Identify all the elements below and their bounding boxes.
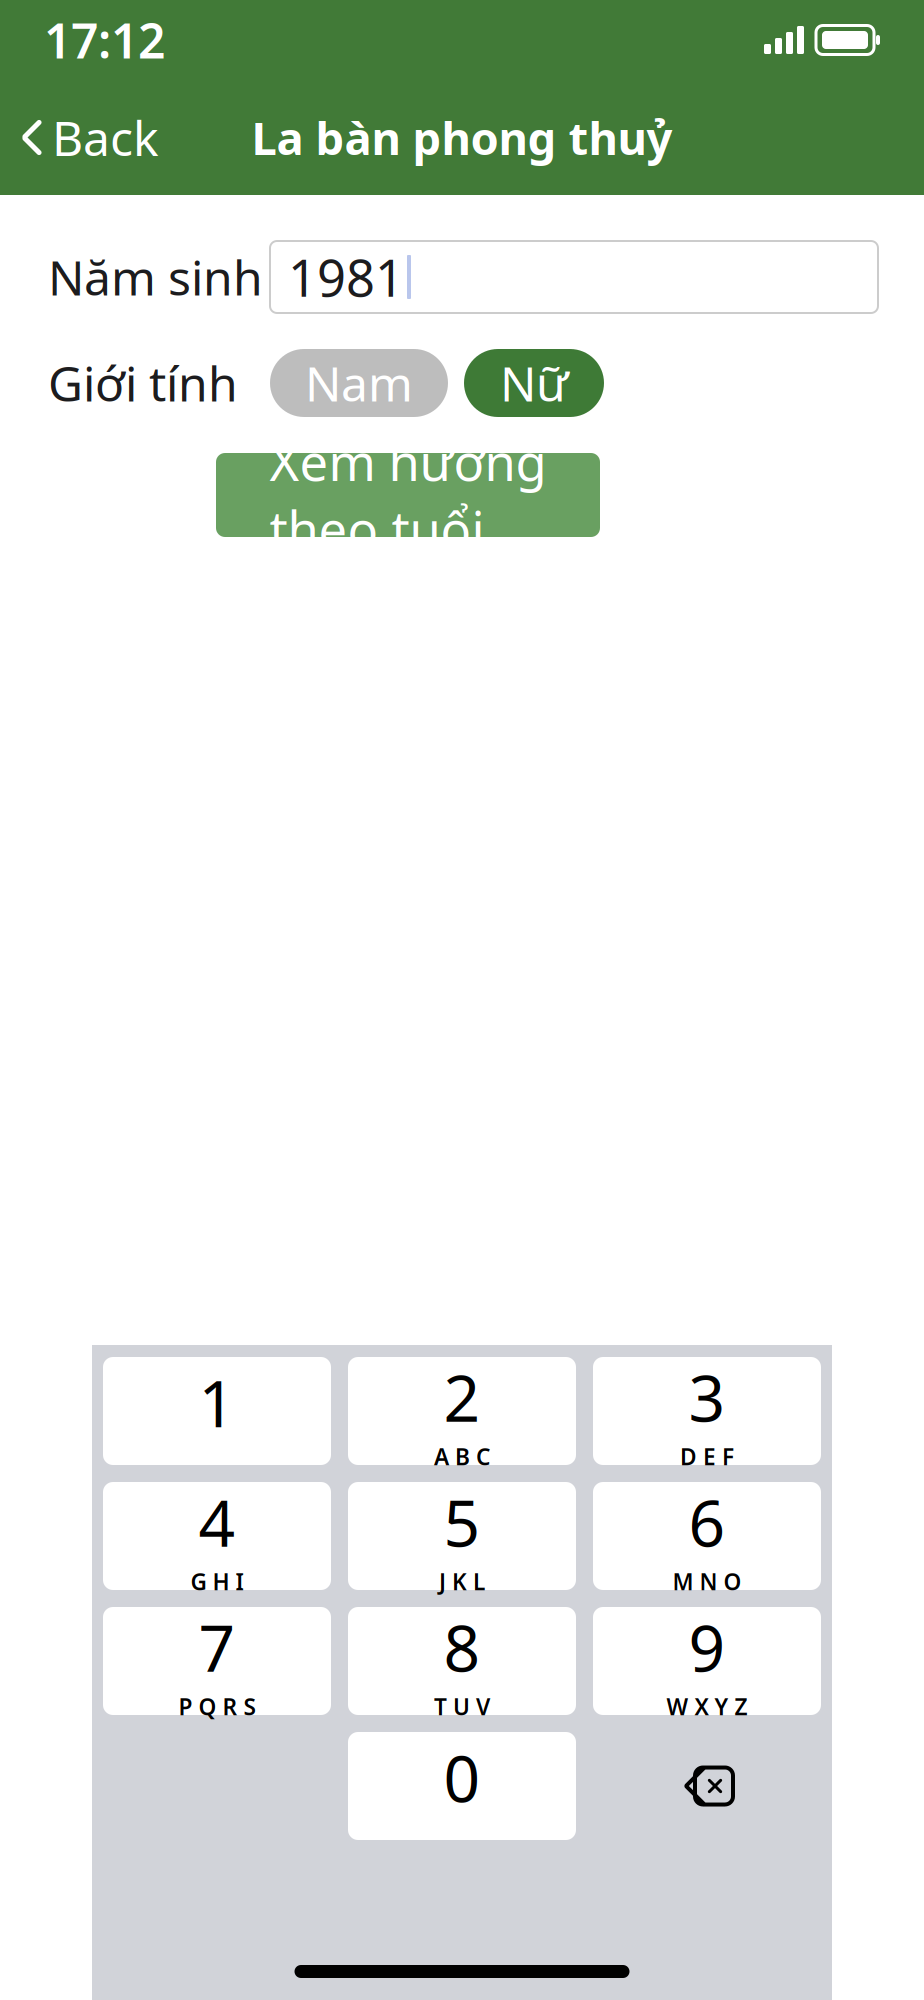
staticText: 8 [443, 1604, 480, 1689]
staticText: 6 [688, 1479, 725, 1564]
staticText: 3 [688, 1354, 725, 1439]
staticText: Năm sinh [48, 245, 263, 309]
button[interactable]: 7 [103, 1607, 331, 1715]
button[interactable]: 0 [348, 1732, 576, 1840]
button[interactable]: Back [0, 92, 181, 183]
staticText: M N O [672, 1566, 741, 1596]
staticText: P Q R S [178, 1691, 255, 1721]
button[interactable]: 3 [593, 1357, 821, 1465]
button[interactable]: 5 [348, 1482, 576, 1590]
staticText: W X Y Z [666, 1691, 747, 1721]
staticText: 17:12 [44, 8, 165, 72]
staticText: Xem hướng theo tuổi [269, 428, 546, 562]
staticText: Giới tính [48, 351, 238, 415]
staticText: Nữ [500, 351, 568, 415]
button[interactable]: 4 [103, 1482, 331, 1590]
button[interactable]: Xem hướng theo tuổi [216, 453, 600, 537]
staticText: La bàn phong thuỷ [251, 107, 672, 168]
staticText: 1981 [288, 243, 404, 311]
staticText: 0 [443, 1735, 480, 1820]
staticText: Back [52, 106, 159, 169]
button[interactable]: 1 [103, 1357, 331, 1465]
staticText: D E F [680, 1441, 734, 1471]
button[interactable]: 1981 [270, 241, 878, 313]
button[interactable]: Nữ [464, 349, 604, 417]
button[interactable]: 2 [348, 1357, 576, 1465]
staticText: Nam [305, 351, 413, 415]
staticText: T U V [434, 1691, 490, 1721]
button[interactable]: 6 [593, 1482, 821, 1590]
button[interactable]: 8 [348, 1607, 576, 1715]
staticText: A B C [434, 1441, 490, 1471]
staticText: J K L [439, 1566, 485, 1596]
staticText: 2 [443, 1354, 480, 1439]
staticText: 7 [198, 1604, 235, 1689]
staticText: 4 [198, 1479, 235, 1564]
staticText: 9 [688, 1604, 725, 1689]
button[interactable]: Delete [593, 1732, 821, 1840]
staticText: G H I [190, 1566, 243, 1596]
button[interactable]: Nam [270, 349, 448, 417]
button[interactable]: 9 [593, 1607, 821, 1715]
staticText: 5 [443, 1479, 480, 1564]
staticText: 1 [198, 1360, 235, 1445]
